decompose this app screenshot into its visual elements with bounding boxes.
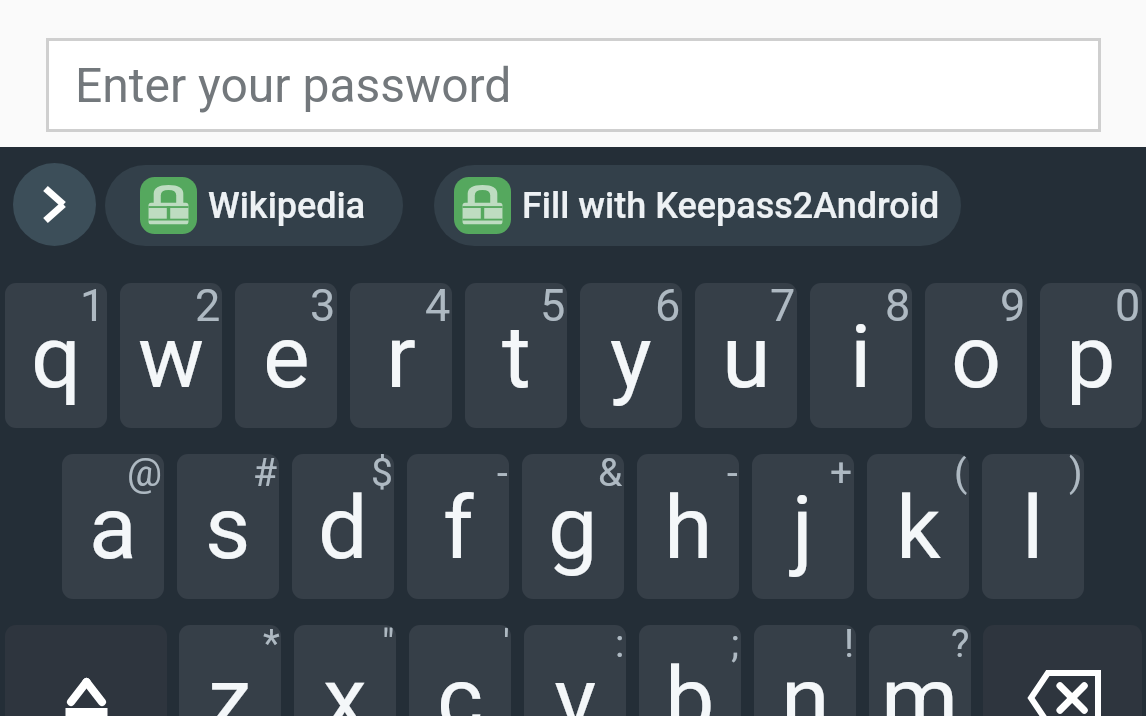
- staticText: Wikipedia: [208, 185, 366, 227]
- staticText: t: [502, 305, 531, 408]
- button[interactable]: Backspace: [983, 625, 1142, 716]
- button[interactable]: Wikipedia: [105, 165, 403, 246]
- button[interactable]: @: [62, 454, 164, 599]
- staticText: 3: [310, 283, 336, 332]
- staticText: h: [664, 476, 713, 579]
- staticText: 2: [195, 283, 221, 332]
- staticText: *: [263, 625, 280, 667]
- staticText: p: [1066, 305, 1116, 408]
- staticText: q: [31, 305, 82, 408]
- staticText: #: [253, 454, 278, 496]
- staticText: 6: [655, 283, 681, 332]
- button[interactable]: ': [409, 625, 511, 716]
- button[interactable]: !: [754, 625, 856, 716]
- button[interactable]: Fill with Keepass2Android: [434, 165, 961, 246]
- staticText: f: [443, 476, 474, 579]
- staticText: z: [208, 647, 252, 716]
- staticText: 1: [80, 283, 106, 332]
- staticText: ;: [731, 625, 740, 667]
- staticText: ?: [951, 625, 970, 667]
- button[interactable]: -: [637, 454, 739, 599]
- button[interactable]: 7: [695, 283, 797, 428]
- button[interactable]: 8: [810, 283, 912, 428]
- button[interactable]: 2: [120, 283, 222, 428]
- staticText: ": [382, 625, 395, 667]
- staticText: :: [615, 625, 625, 667]
- button[interactable]: 3: [235, 283, 337, 428]
- button[interactable]: 1: [5, 283, 107, 428]
- staticText: n: [781, 647, 830, 716]
- button[interactable]: 6: [580, 283, 682, 428]
- button[interactable]: $: [292, 454, 394, 599]
- button[interactable]: #: [177, 454, 279, 599]
- button[interactable]: ): [982, 454, 1084, 599]
- staticText: k: [896, 476, 941, 579]
- staticText: +: [830, 454, 853, 496]
- staticText: &: [598, 454, 623, 496]
- button[interactable]: Enter your password: [46, 38, 1101, 132]
- staticText: d: [318, 476, 368, 579]
- staticText: -: [497, 454, 508, 496]
- staticText: 0: [1115, 283, 1141, 332]
- staticText: r: [386, 305, 416, 408]
- staticText: 5: [540, 283, 566, 332]
- staticText: 7: [770, 283, 796, 332]
- staticText: v: [554, 647, 597, 716]
- staticText: u: [722, 305, 771, 408]
- button[interactable]: 4: [350, 283, 452, 428]
- staticText: g: [548, 476, 598, 579]
- staticText: 8: [885, 283, 911, 332]
- staticText: ': [503, 625, 510, 667]
- button[interactable]: Show more suggestions: [13, 163, 96, 246]
- button[interactable]: *: [179, 625, 281, 716]
- staticText: !: [844, 625, 855, 667]
- staticText: w: [138, 305, 205, 408]
- staticText: ): [1069, 454, 1083, 496]
- staticText: @: [127, 454, 163, 496]
- button[interactable]: +: [752, 454, 854, 599]
- staticText: x: [323, 647, 367, 716]
- staticText: a: [89, 476, 137, 579]
- staticText: o: [951, 305, 1002, 408]
- button[interactable]: :: [524, 625, 626, 716]
- staticText: m: [881, 647, 959, 716]
- staticText: -: [727, 454, 738, 496]
- button[interactable]: Shift: [5, 625, 167, 716]
- staticText: Fill with Keepass2Android: [522, 185, 940, 227]
- staticText: i: [850, 305, 872, 408]
- button[interactable]: ;: [639, 625, 741, 716]
- staticText: Enter your password: [75, 57, 512, 113]
- button[interactable]: (: [867, 454, 969, 599]
- staticText: $: [371, 454, 393, 496]
- staticText: e: [263, 305, 310, 408]
- button[interactable]: ": [294, 625, 396, 716]
- staticText: b: [665, 647, 715, 716]
- button[interactable]: -: [407, 454, 509, 599]
- button[interactable]: ?: [869, 625, 971, 716]
- staticText: s: [205, 476, 251, 579]
- staticText: 9: [1000, 283, 1026, 332]
- staticText: c: [437, 647, 484, 716]
- button[interactable]: 0: [1040, 283, 1142, 428]
- staticText: l: [1022, 476, 1044, 579]
- staticText: y: [610, 305, 652, 408]
- button[interactable]: 5: [465, 283, 567, 428]
- button[interactable]: 9: [925, 283, 1027, 428]
- staticText: j: [792, 476, 814, 579]
- staticText: 4: [425, 283, 451, 332]
- staticText: (: [954, 454, 968, 496]
- button[interactable]: &: [522, 454, 624, 599]
